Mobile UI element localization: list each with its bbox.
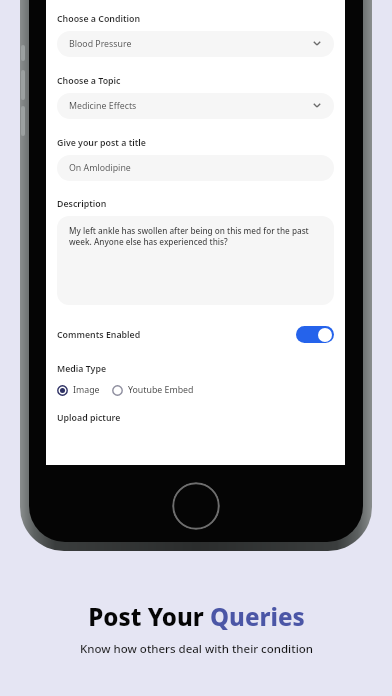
staticText: Comments Enabled bbox=[57, 329, 296, 341]
staticText: Give your post a title bbox=[57, 137, 146, 149]
staticText: Description bbox=[57, 198, 107, 210]
button[interactable]: On Amlodipine bbox=[57, 155, 334, 181]
staticText: Know how others deal with their conditio… bbox=[80, 641, 313, 657]
staticText: Choose a Topic bbox=[57, 75, 121, 87]
staticText: Post Your Queries bbox=[88, 600, 305, 633]
button[interactable]: Comments enabled toggle bbox=[296, 326, 334, 343]
staticText: Upload picture bbox=[57, 412, 121, 424]
button[interactable]: Medicine Effects bbox=[57, 93, 334, 119]
staticText: Image bbox=[73, 384, 100, 396]
button[interactable]: My left ankle has swollen after being on… bbox=[57, 216, 334, 305]
button[interactable]: Youtube Embed bbox=[112, 384, 194, 396]
button[interactable]: Comments Enabled bbox=[57, 326, 334, 343]
button[interactable]: Home bbox=[172, 482, 220, 530]
staticText: Choose a Condition bbox=[57, 13, 141, 25]
staticText: My left ankle has swollen after being on… bbox=[69, 225, 324, 248]
staticText: On Amlodipine bbox=[69, 162, 131, 174]
staticText: Youtube Embed bbox=[128, 384, 194, 396]
staticText: Media Type bbox=[57, 363, 107, 375]
staticText: Medicine Effects bbox=[69, 100, 312, 112]
button[interactable]: Blood Pressure bbox=[57, 31, 334, 57]
staticText: Blood Pressure bbox=[69, 38, 312, 50]
button[interactable]: Image bbox=[57, 384, 100, 396]
